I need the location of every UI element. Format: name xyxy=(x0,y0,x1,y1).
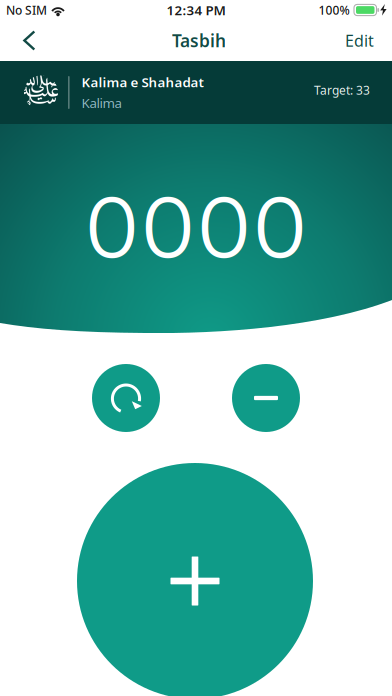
button[interactable]: Reset counter xyxy=(92,364,160,432)
staticText: 0000 xyxy=(84,173,308,279)
staticText: Kalima xyxy=(82,94,122,112)
button[interactable]: Back xyxy=(0,20,50,61)
staticText: Kalima e Shahadat xyxy=(82,73,204,91)
staticText: 100% xyxy=(318,2,349,18)
staticText: Target: 33 xyxy=(314,82,370,98)
button[interactable]: Decrease count xyxy=(232,364,300,432)
staticText: ﷺ xyxy=(21,60,60,125)
staticText: Edit xyxy=(345,30,374,51)
staticText: 12:34 PM xyxy=(166,1,225,19)
button[interactable]: Increase count xyxy=(77,463,313,696)
button[interactable]: Edit xyxy=(329,20,392,61)
staticText: Tasbih xyxy=(172,29,226,52)
staticText: No SIM xyxy=(6,2,47,18)
